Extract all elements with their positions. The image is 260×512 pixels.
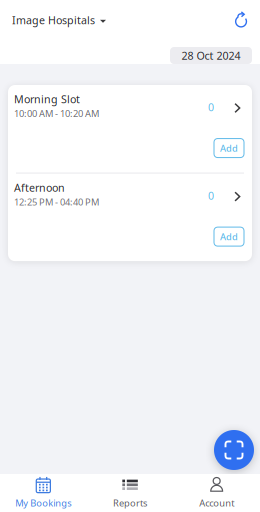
staticText: 12:25 PM - 04:40 PM [14,196,99,208]
staticText: 10:00 AM - 10:20 AM [14,107,99,120]
staticText: Account [199,497,234,509]
staticText: Image Hospitals [12,13,95,27]
staticText: 0 [208,100,214,114]
button[interactable]: Reports [87,471,173,512]
staticText: Reports [113,497,147,509]
button[interactable]: Scan [214,430,254,470]
staticText: Add [220,142,238,154]
button[interactable]: My Bookings [0,471,87,512]
staticText: Afternoon [14,181,65,195]
staticText: Morning Slot [14,92,80,106]
staticText: 0 [208,189,214,203]
button[interactable]: Add [214,139,244,158]
button[interactable]: Add [214,227,244,246]
button[interactable]: Image Hospitals [12,13,106,27]
staticText: Add [220,230,238,243]
button[interactable]: Account [173,471,260,512]
staticText: 28 Oct 2024 [181,48,240,63]
button[interactable]: 28 Oct 2024 [170,47,252,64]
button[interactable]: Refresh [234,12,249,27]
staticText: My Bookings [15,497,71,509]
